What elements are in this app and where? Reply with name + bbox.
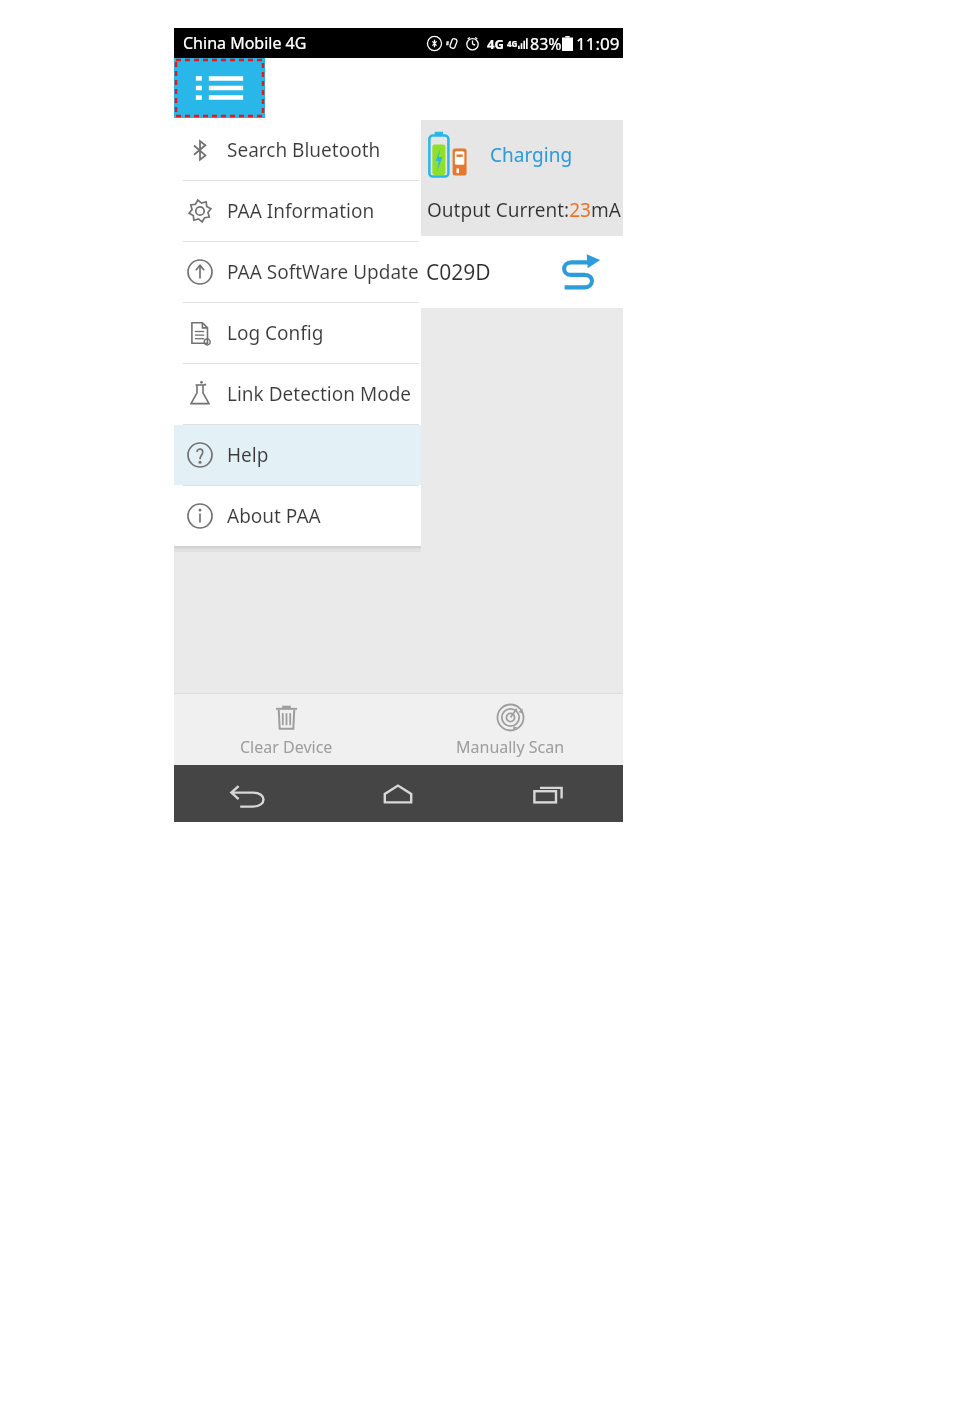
staticText: C029D xyxy=(426,258,491,287)
staticText: Link Detection Mode xyxy=(227,381,412,407)
button[interactable]: PAA Information xyxy=(174,181,421,241)
button[interactable]: About PAA xyxy=(174,486,421,546)
button[interactable]: Clear Device xyxy=(174,694,398,765)
staticText: Log Config xyxy=(227,320,324,346)
button[interactable]: Help xyxy=(174,425,421,485)
button[interactable]: Search Bluetooth xyxy=(174,120,421,180)
button[interactable]: Open navigation menu xyxy=(174,58,265,118)
button[interactable]: PAA SoftWare Update xyxy=(174,242,421,302)
staticText: China Mobile 4G xyxy=(183,32,307,54)
staticText: 4G xyxy=(507,38,518,49)
staticText: Clear Device xyxy=(240,736,333,758)
button[interactable]: Link Detection Mode xyxy=(174,364,421,424)
button[interactable]: Log Config xyxy=(174,303,421,363)
staticText: 11:09 xyxy=(576,32,620,55)
button[interactable]: Manually Scan xyxy=(398,694,623,765)
staticText: Charging xyxy=(490,142,573,168)
button[interactable]: Home xyxy=(323,765,473,822)
staticText: PAA SoftWare Update xyxy=(227,259,419,285)
staticText: 4G xyxy=(487,35,504,53)
staticText: About PAA xyxy=(227,503,321,529)
staticText: 83% xyxy=(530,33,562,55)
button[interactable]: Connect device xyxy=(555,248,603,296)
staticText: Manually Scan xyxy=(456,736,565,758)
button[interactable]: Recents xyxy=(473,765,623,822)
staticText: PAA Information xyxy=(227,198,375,224)
staticText: Output Current:23mA xyxy=(427,197,621,223)
button[interactable]: C029D xyxy=(174,236,623,308)
staticText: Help xyxy=(227,442,269,468)
staticText: Search Bluetooth xyxy=(227,137,381,163)
button[interactable]: Back xyxy=(174,765,323,822)
